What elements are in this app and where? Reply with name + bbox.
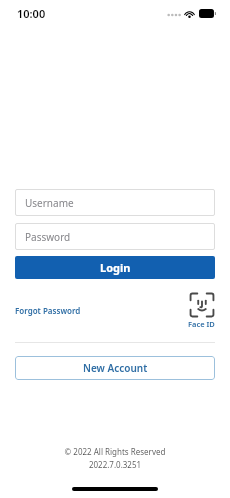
button[interactable]: New Account bbox=[15, 356, 215, 380]
button[interactable]: Face ID login bbox=[188, 292, 215, 329]
button[interactable]: Forgot Password bbox=[15, 302, 81, 319]
staticText: Password bbox=[25, 230, 71, 244]
staticText: Forgot Password bbox=[15, 305, 81, 316]
button[interactable]: Username bbox=[15, 189, 215, 216]
staticText: 10:00 bbox=[17, 6, 46, 21]
staticText: Login bbox=[100, 260, 131, 275]
staticText: New Account bbox=[83, 361, 148, 375]
button[interactable]: Password bbox=[15, 223, 215, 250]
staticText: Username bbox=[25, 196, 74, 210]
staticText: 2022.7.0.3251 bbox=[0, 459, 230, 470]
staticText: © 2022 All Rights Reserved bbox=[0, 446, 230, 457]
staticText: Face ID bbox=[188, 319, 215, 329]
button[interactable]: Login bbox=[15, 256, 215, 279]
